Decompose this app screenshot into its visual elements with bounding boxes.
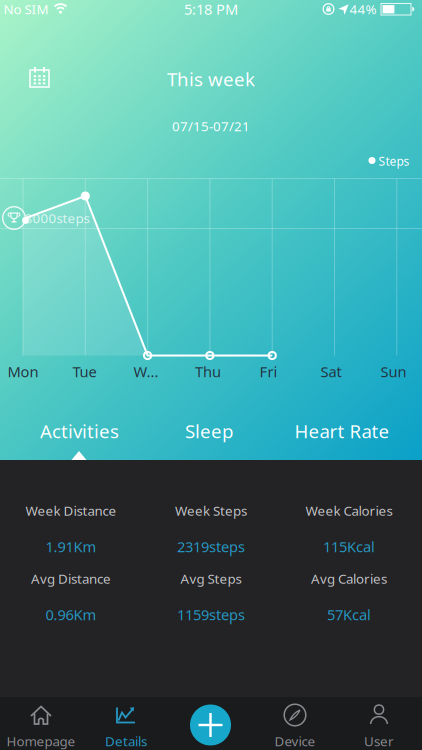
- button[interactable]: Details: [84, 697, 168, 750]
- button[interactable]: Heart Rate: [282, 413, 402, 449]
- button[interactable]: Sleep: [159, 413, 259, 449]
- staticText: Avg Calories: [311, 570, 387, 587]
- staticText: Mon: [7, 362, 38, 381]
- staticText: This week: [167, 67, 255, 91]
- staticText: Heart Rate: [294, 419, 389, 443]
- staticText: Activities: [40, 419, 119, 443]
- staticText: Week Steps: [175, 502, 247, 519]
- staticText: 1159steps: [177, 605, 245, 624]
- staticText: 07/15-07/21: [172, 117, 250, 135]
- button[interactable]: Activities: [19, 413, 139, 449]
- button[interactable]: Add: [186, 701, 234, 749]
- staticText: No SIM: [3, 0, 48, 18]
- staticText: Avg Distance: [31, 570, 111, 587]
- staticText: 5:18 PM: [184, 0, 238, 19]
- staticText: Fri: [259, 362, 277, 381]
- button[interactable]: User: [337, 697, 421, 750]
- staticText: Details: [105, 732, 147, 750]
- button[interactable]: Calendar: [21, 62, 57, 96]
- staticText: Week Distance: [25, 502, 116, 519]
- staticText: W...: [133, 362, 158, 381]
- staticText: Week Calories: [305, 502, 392, 519]
- staticText: Sleep: [185, 419, 233, 443]
- staticText: Device: [274, 732, 315, 750]
- staticText: 57Kcal: [327, 605, 371, 624]
- staticText: 2319steps: [177, 537, 245, 556]
- staticText: User: [364, 732, 394, 750]
- button[interactable]: Homepage: [0, 697, 83, 750]
- staticText: Thu: [195, 362, 221, 381]
- staticText: Avg Steps: [180, 570, 241, 587]
- staticText: Homepage: [6, 732, 75, 750]
- staticText: 115Kcal: [323, 537, 375, 556]
- staticText: Sun: [380, 362, 406, 381]
- staticText: 44%: [349, 0, 376, 18]
- staticText: 1.91Km: [45, 537, 96, 556]
- staticText: Tue: [72, 362, 96, 381]
- staticText: Sat: [320, 362, 341, 381]
- staticText: 0.96Km: [45, 605, 96, 624]
- staticText: Steps: [378, 153, 409, 169]
- button[interactable]: Device: [253, 697, 337, 750]
- staticText: 8000steps: [24, 209, 89, 227]
